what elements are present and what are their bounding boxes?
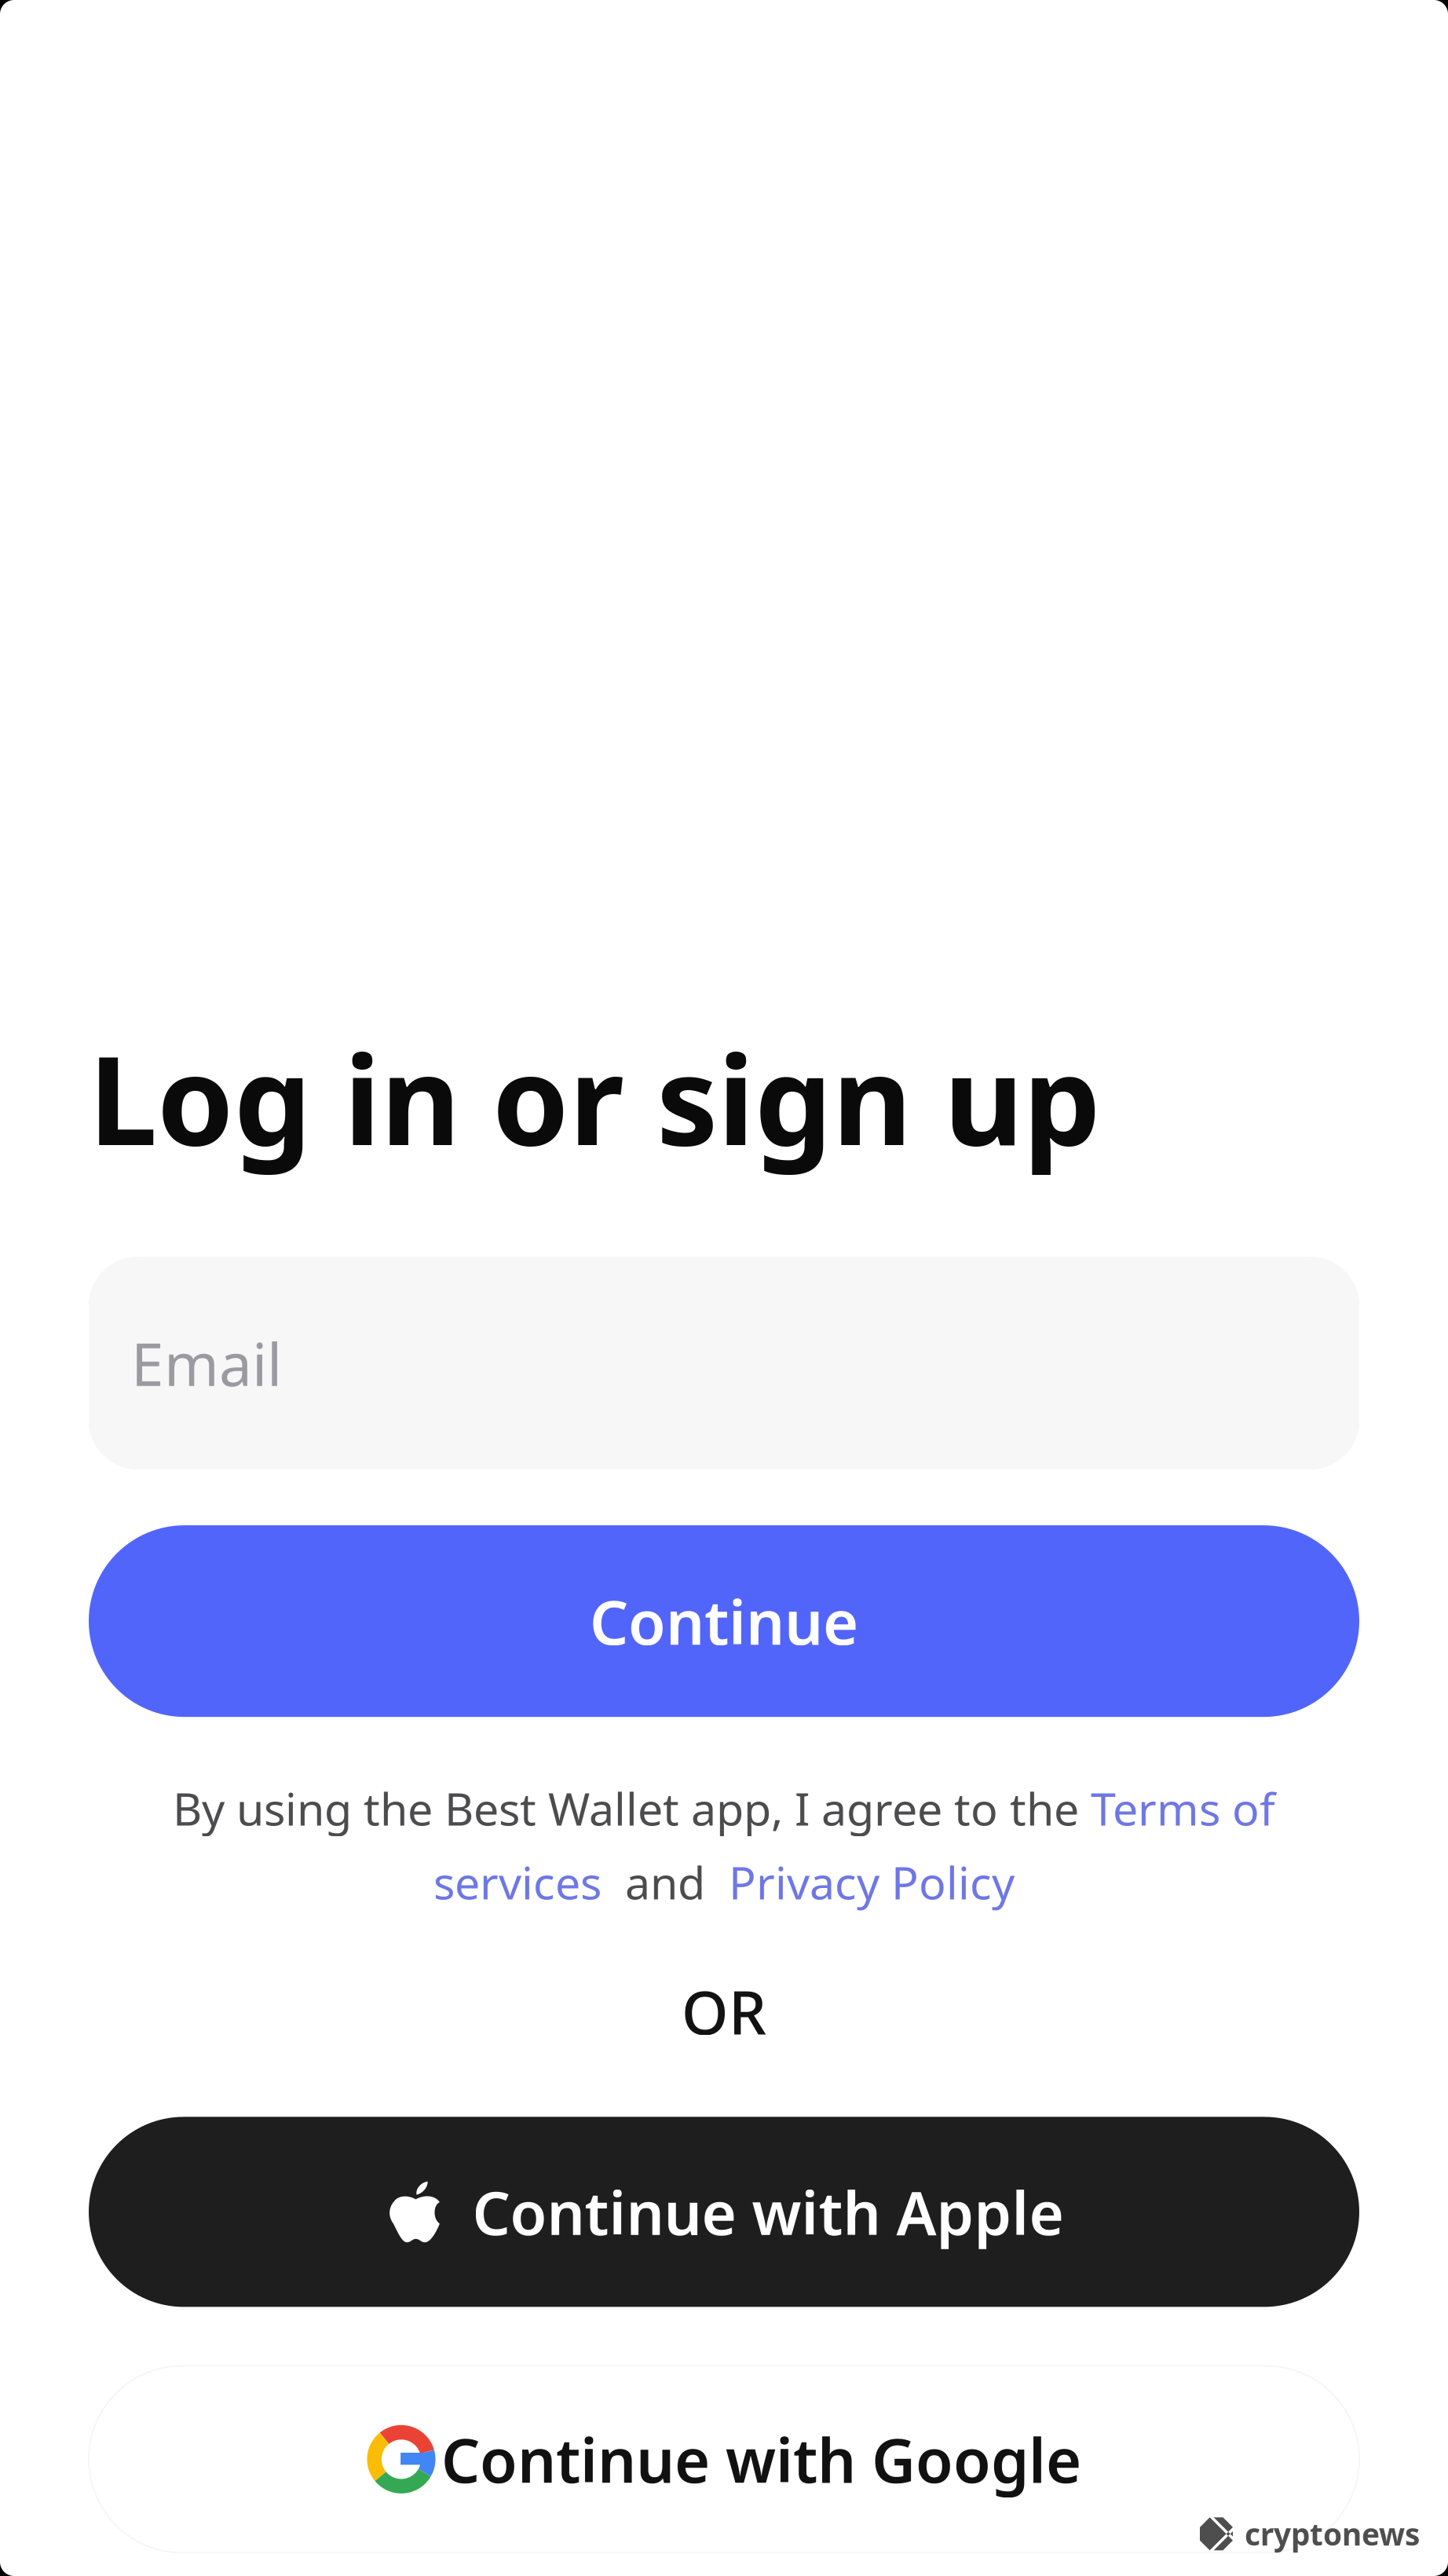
button[interactable]: services [433,1852,602,1912]
button[interactable]: Email [89,1257,1359,1470]
staticText: Continue with Apple [472,2172,1064,2251]
staticText: services [433,1852,602,1912]
staticText: By using the Best Wallet app, I agree to… [173,1778,1091,1838]
staticText: Continue with Google [441,2419,1081,2500]
staticText: OR [682,1972,766,2051]
button[interactable]: Continue with Google [89,2366,1359,2553]
button[interactable]: Privacy Policy [729,1852,1015,1912]
staticText: Log in or sign up [89,1016,1101,1179]
button[interactable]: Continue [89,1525,1359,1717]
staticText: Email [131,1324,282,1402]
staticText: Continue [590,1581,858,1661]
staticText: Privacy Policy [729,1852,1015,1912]
staticText: and [602,1852,729,1912]
staticText: cryptonews [1245,2514,1420,2554]
staticText: Terms of [1091,1778,1275,1838]
button[interactable]: Continue with Apple [89,2117,1359,2307]
button[interactable]: Terms of [1091,1778,1275,1838]
